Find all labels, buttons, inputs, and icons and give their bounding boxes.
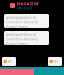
staticText: Lorem ipsum dolor sit — [6, 16, 36, 19]
staticText: abc — [8, 60, 12, 63]
staticText: Eiusmod tempor — [6, 42, 28, 46]
staticText: MAGAZINE — [16, 1, 38, 6]
staticText: daily digest — [16, 6, 32, 10]
staticText: Consectetur adipiscing — [6, 37, 38, 41]
staticText: Lorem ipsum dolor sit — [6, 33, 36, 36]
staticText: Consectetur adipiscing — [6, 20, 38, 24]
staticText: Eiusmod tempor — [6, 25, 28, 29]
staticText: abc — [54, 60, 58, 63]
